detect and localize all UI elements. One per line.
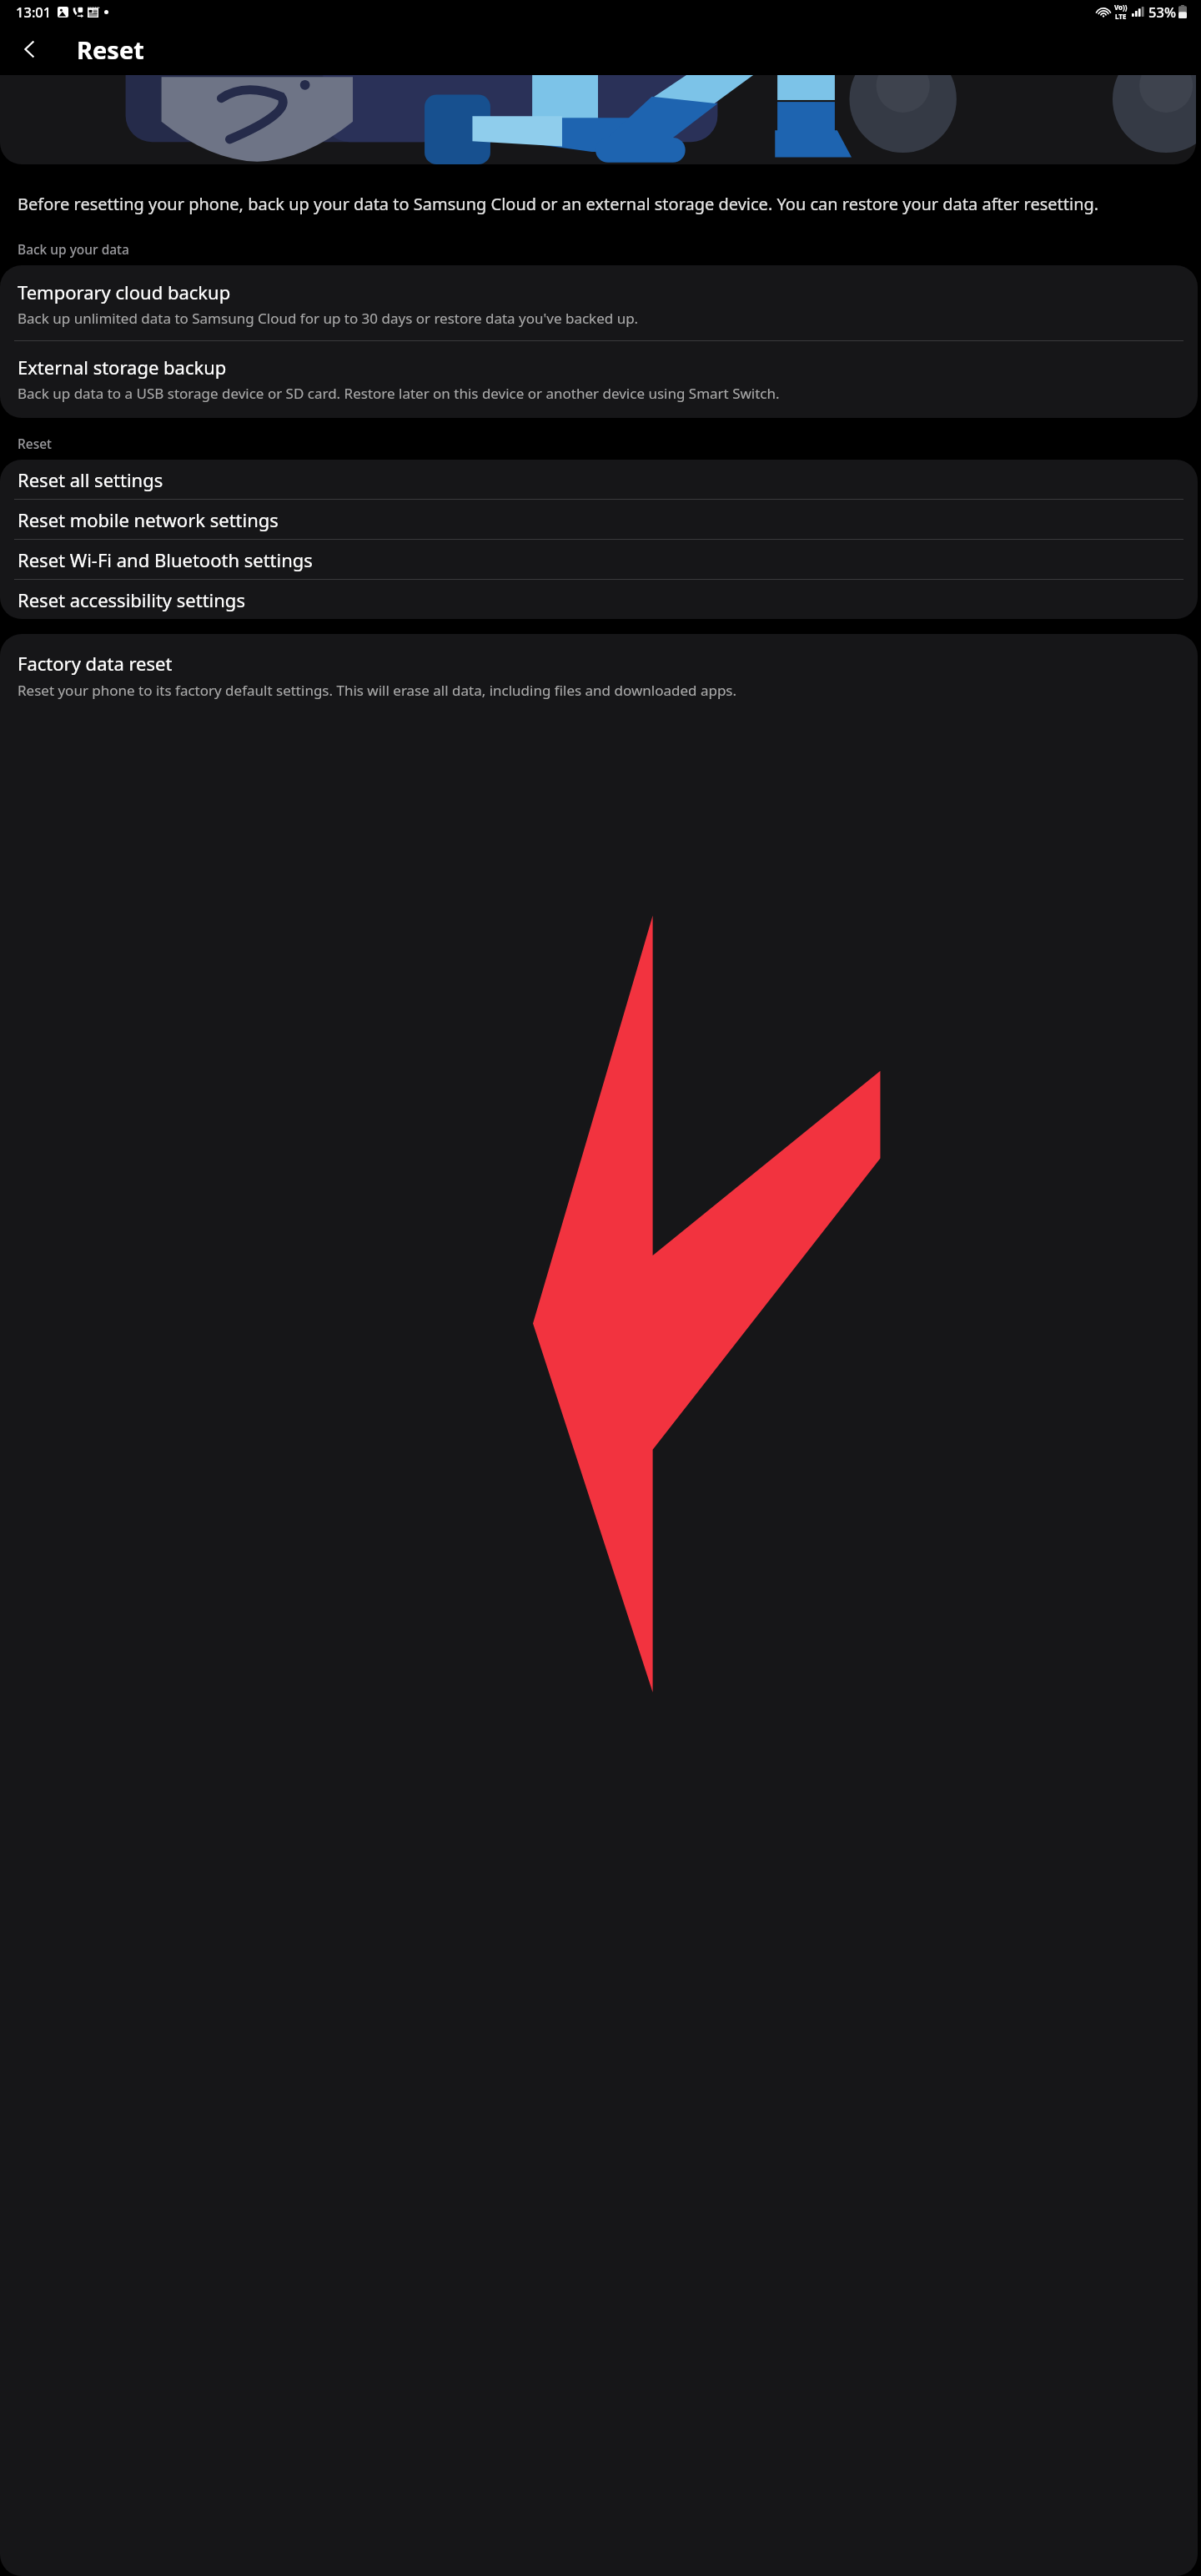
staticText: Back up unlimited data to Samsung Cloud …: [18, 309, 639, 328]
staticText: Back up your data: [18, 240, 129, 258]
staticText: Reset your phone to its factory default …: [18, 681, 737, 700]
button[interactable]: External storage backup: [0, 341, 1198, 418]
button[interactable]: Reset mobile network settings: [0, 500, 1198, 539]
staticText: Factory data reset: [18, 651, 173, 676]
button[interactable]: Back: [11, 30, 49, 68]
staticText: 13:01: [16, 3, 52, 21]
button[interactable]: Reset Wi-Fi and Bluetooth settings: [0, 540, 1198, 579]
staticText: Reset: [18, 435, 53, 452]
button[interactable]: Factory data reset: [0, 634, 1198, 725]
staticText: External storage backup: [18, 355, 227, 380]
staticText: Reset mobile network settings: [18, 507, 279, 532]
staticText: Reset accessibility settings: [18, 587, 245, 612]
staticText: Vo)): [1114, 3, 1128, 12]
staticText: Temporary cloud backup: [18, 279, 231, 304]
button[interactable]: Temporary cloud backup: [0, 265, 1198, 340]
staticText: Reset: [77, 33, 144, 66]
staticText: Reset all settings: [18, 467, 163, 492]
staticText: LTE: [1115, 12, 1127, 21]
staticText: Back up data to a USB storage device or …: [18, 384, 780, 403]
button[interactable]: Reset all settings: [0, 460, 1198, 499]
staticText: Reset Wi-Fi and Bluetooth settings: [18, 547, 313, 572]
button[interactable]: Reset accessibility settings: [0, 580, 1198, 619]
staticText: 53%: [1148, 3, 1176, 21]
staticText: Before resetting your phone, back up you…: [18, 193, 1099, 215]
